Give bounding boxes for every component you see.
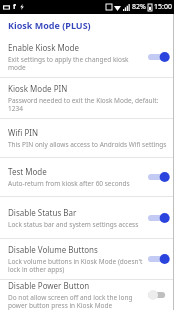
staticText: Password needed to exit the Kiosk Mode, …	[8, 96, 170, 113]
staticText: Disable Status Bar	[8, 207, 77, 218]
button[interactable]: Disable Power Button	[0, 280, 174, 310]
button[interactable]: Disable Status Bar	[0, 197, 174, 238]
button[interactable]: Wifi PIN	[0, 119, 174, 157]
button[interactable]: Enable Kiosk Mode	[0, 36, 174, 77]
staticText: Kiosk Mode PIN	[8, 83, 68, 94]
staticText: Enable Kiosk Mode	[8, 42, 80, 53]
staticText: f	[13, 2, 16, 12]
staticText: 82%	[132, 2, 146, 12]
button[interactable]: Toggle on	[148, 253, 170, 265]
staticText: Wifi PIN	[8, 127, 39, 138]
staticText: Test Mode	[8, 166, 47, 177]
staticText: Lock status bar and system settings acce…	[8, 220, 139, 229]
button[interactable]: Toggle on	[148, 212, 170, 224]
staticText: Disable Power Button	[8, 280, 90, 291]
button[interactable]: Kiosk Mode PIN	[0, 78, 174, 118]
staticText: Disable Volume Buttons	[8, 244, 98, 255]
staticText: Exit settings to apply the changed kiosk…	[8, 55, 144, 72]
button[interactable]: Toggle off	[148, 289, 170, 301]
button[interactable]: Toggle on	[148, 171, 170, 183]
staticText: This PIN only allows access to Androids …	[8, 140, 167, 149]
staticText: Lock volume buttons in Kiosk Mode (doesn…	[8, 257, 144, 274]
staticText: 15:00	[154, 2, 172, 12]
staticText: Auto-return from kiosk after 60 seconds	[8, 179, 130, 188]
button[interactable]: Test Mode	[0, 158, 174, 196]
staticText: Do not allow screen off and lock the lon…	[8, 293, 144, 310]
staticText: Kiosk Mode (PLUS)	[8, 19, 91, 31]
button[interactable]: Toggle on	[148, 51, 170, 63]
button[interactable]: Disable Volume Buttons	[0, 239, 174, 279]
